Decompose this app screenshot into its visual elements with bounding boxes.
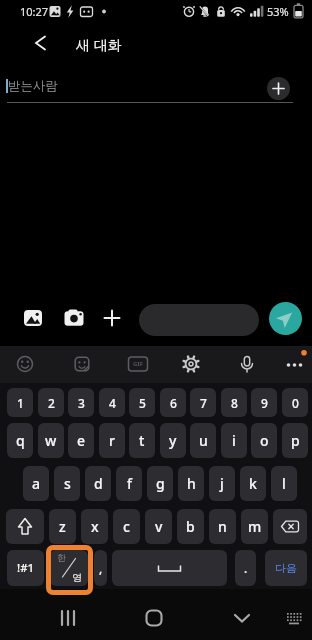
button[interactable]: . [235, 550, 256, 586]
button[interactable] [6, 509, 44, 544]
staticText: h [187, 474, 196, 493]
staticText: v [155, 517, 163, 536]
button[interactable]: y [160, 423, 186, 458]
button[interactable]: o [251, 423, 277, 458]
button[interactable] [269, 302, 302, 335]
button[interactable]: c [113, 509, 140, 544]
staticText: 0 [292, 395, 299, 411]
button[interactable]: l [271, 466, 297, 501]
button[interactable]: k [240, 466, 266, 501]
button[interactable]: 8 [221, 388, 247, 417]
button[interactable]: 0 [282, 388, 308, 417]
staticText: q [16, 431, 25, 450]
button[interactable]: h [178, 466, 204, 501]
staticText: !#1 [17, 560, 35, 576]
button[interactable] [12, 351, 38, 377]
button[interactable] [139, 304, 259, 336]
button[interactable]: b [177, 509, 204, 544]
button[interactable]: 한 [50, 550, 88, 586]
button[interactable]: u [190, 423, 216, 458]
staticText: u [199, 431, 208, 450]
staticText: m [248, 517, 262, 536]
button[interactable]: 2 [38, 388, 64, 417]
staticText: 영 [72, 571, 82, 584]
staticText: e [77, 431, 86, 450]
button[interactable] [222, 598, 262, 638]
button[interactable]: 9 [251, 388, 277, 417]
button[interactable]: 6 [160, 388, 186, 417]
button[interactable] [112, 550, 227, 586]
staticText: 3 [78, 395, 85, 411]
button[interactable] [282, 351, 310, 377]
staticText: 받는사람 [8, 78, 58, 94]
button[interactable] [69, 351, 95, 377]
button[interactable]: GIF [127, 353, 149, 375]
staticText: 1 [17, 395, 24, 411]
button[interactable]: p [282, 423, 308, 458]
staticText: c [123, 517, 130, 536]
button[interactable] [48, 598, 88, 638]
staticText: l [282, 474, 286, 493]
button[interactable] [234, 351, 260, 377]
staticText: 6 [170, 395, 177, 411]
button[interactable] [63, 307, 85, 329]
button[interactable]: v [145, 509, 172, 544]
staticText: a [32, 474, 41, 493]
button[interactable]: a [23, 466, 49, 501]
button[interactable]: , [94, 550, 107, 586]
button[interactable] [103, 309, 121, 327]
staticText: i [232, 431, 236, 450]
button[interactable]: q [7, 423, 33, 458]
staticText: s [64, 474, 71, 493]
button[interactable]: w [38, 423, 64, 458]
button[interactable]: r [99, 423, 125, 458]
staticText: 다음 [275, 561, 297, 575]
staticText: d [94, 474, 103, 493]
button[interactable] [134, 598, 174, 638]
staticText: 4 [109, 395, 116, 411]
staticText: z [59, 517, 66, 536]
staticText: 10:27 [20, 4, 49, 19]
button[interactable] [267, 77, 290, 100]
staticText: w [45, 431, 57, 450]
button[interactable]: 다음 [265, 550, 307, 586]
button[interactable]: t [129, 423, 155, 458]
staticText: o [260, 431, 269, 450]
button[interactable] [22, 307, 44, 329]
staticText: x [91, 517, 99, 536]
staticText: 53% [267, 4, 289, 19]
staticText: 8 [231, 395, 238, 411]
button[interactable]: z [49, 509, 76, 544]
button[interactable]: m [241, 509, 268, 544]
button[interactable] [24, 28, 58, 58]
button[interactable]: e [68, 423, 94, 458]
staticText: g [156, 474, 165, 493]
staticText: , [99, 560, 103, 576]
button[interactable]: !#1 [7, 550, 44, 586]
button[interactable]: 1 [7, 388, 33, 417]
staticText: f [127, 474, 132, 493]
staticText: . [244, 560, 248, 576]
staticText: 9 [261, 395, 268, 411]
button[interactable]: j [209, 466, 235, 501]
button[interactable] [178, 351, 204, 377]
staticText: GIF [133, 360, 143, 368]
staticText: 한 [57, 552, 66, 563]
staticText: j [220, 474, 224, 493]
button[interactable] [273, 509, 307, 544]
button[interactable] [280, 604, 308, 632]
button[interactable]: 5 [129, 388, 155, 417]
button[interactable]: x [81, 509, 108, 544]
button[interactable]: 7 [190, 388, 216, 417]
staticText: k [249, 474, 257, 493]
button[interactable]: s [54, 466, 80, 501]
staticText: y [169, 431, 177, 450]
button[interactable]: n [209, 509, 236, 544]
button[interactable]: f [116, 466, 142, 501]
button[interactable]: d [85, 466, 111, 501]
button[interactable]: 3 [68, 388, 94, 417]
staticText: 새 대화 [76, 35, 122, 54]
button[interactable]: 4 [99, 388, 125, 417]
button[interactable]: g [147, 466, 173, 501]
button[interactable]: i [221, 423, 247, 458]
